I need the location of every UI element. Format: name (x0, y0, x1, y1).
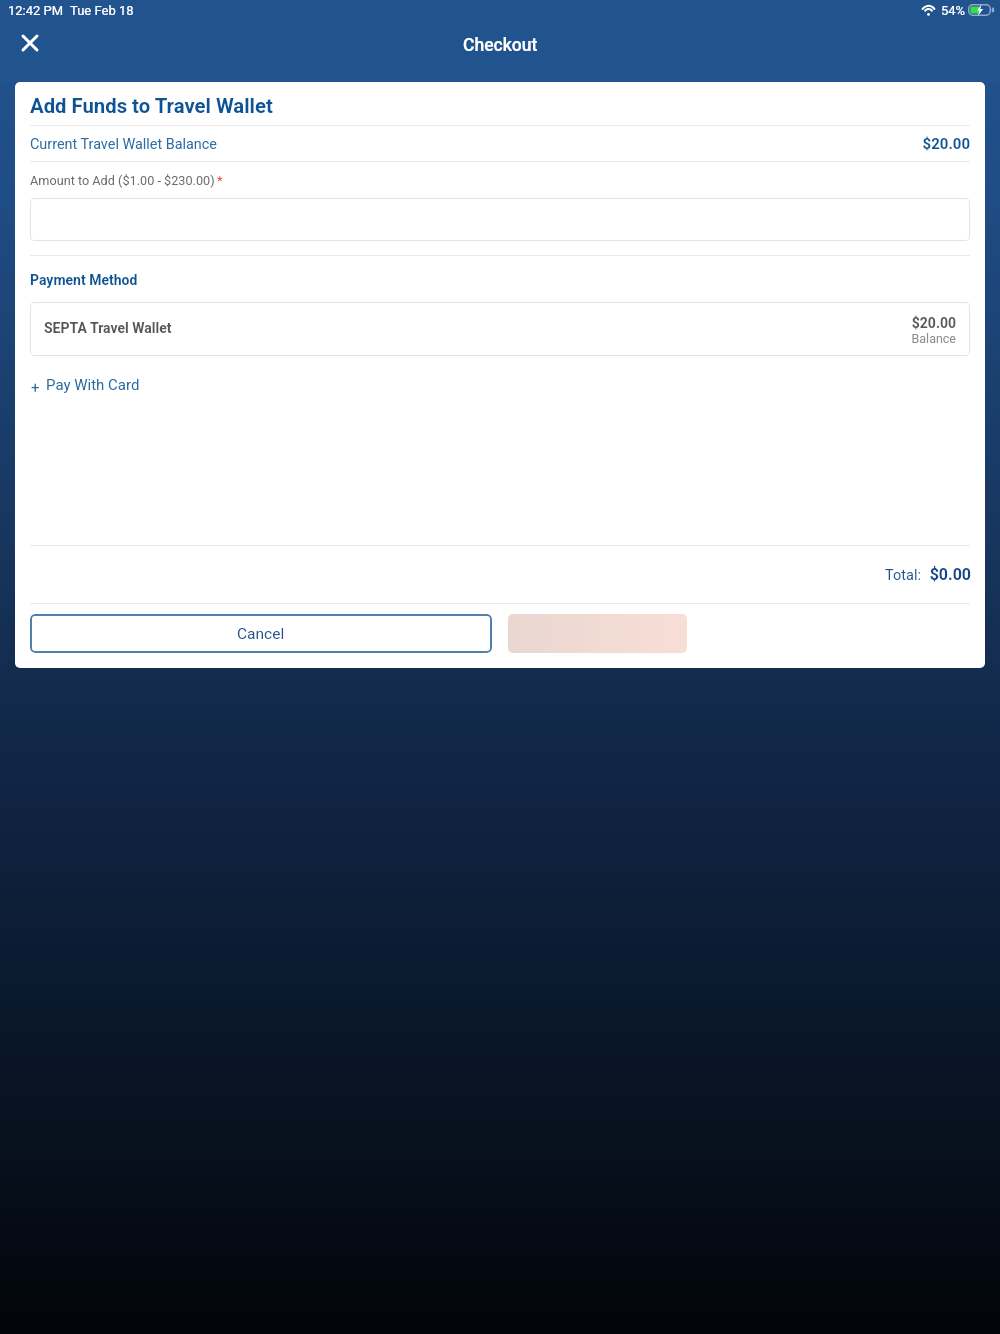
button[interactable]: + (26, 374, 148, 398)
staticText: Cancel (237, 625, 285, 643)
button[interactable]: Add Funds (508, 614, 687, 653)
staticText: 12:42 PM (8, 3, 64, 18)
button[interactable]: Close (7, 21, 52, 66)
button[interactable]: SEPTA Travel Wallet (30, 302, 970, 356)
staticText: SEPTA Travel Wallet (44, 320, 172, 336)
staticText: + (31, 379, 40, 397)
staticText: Add Funds to Travel Wallet (30, 94, 273, 118)
staticText: Pay With Card (46, 376, 140, 394)
staticText: Tue Feb 18 (70, 3, 134, 18)
staticText: Payment Method (30, 272, 138, 288)
staticText: Checkout (463, 35, 538, 56)
staticText: $20.00 (816, 315, 956, 331)
staticText: Balance (816, 331, 956, 346)
button[interactable]: Amount to Add (30, 198, 970, 241)
staticText: Current Travel Wallet Balance (30, 136, 217, 153)
staticText: * (217, 173, 223, 188)
staticText: Amount to Add ($1.00 - $230.00) (30, 173, 215, 188)
staticText: $20.00 (670, 135, 970, 153)
staticText: $0.00 (851, 565, 971, 584)
button[interactable]: Cancel (30, 614, 492, 653)
staticText: Total: (801, 567, 921, 584)
staticText: 54% (941, 3, 966, 18)
